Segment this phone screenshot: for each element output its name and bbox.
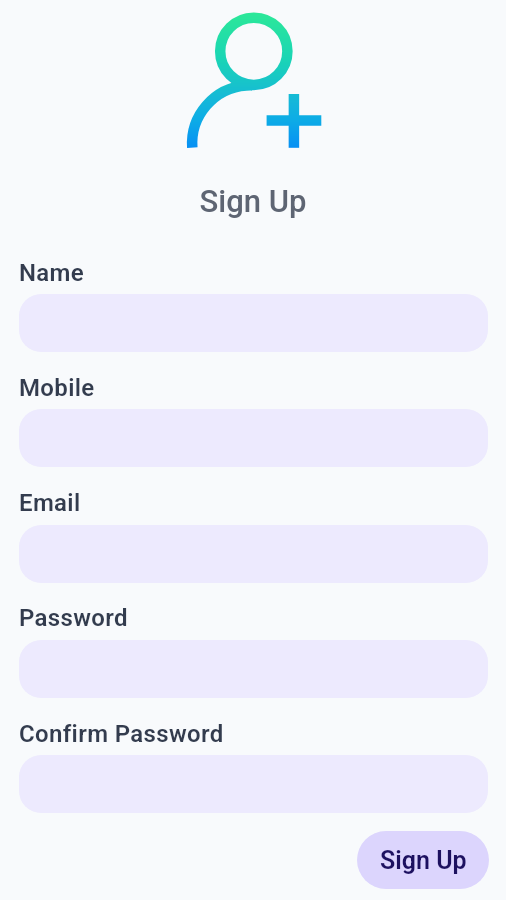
other: Add person	[0, 0, 506, 900]
staticText: Email	[19, 489, 81, 517]
staticText: Sign Up	[380, 846, 467, 875]
staticText: Sign Up	[0, 183, 506, 219]
staticText: Name	[19, 259, 85, 287]
button[interactable]: Sign Up	[357, 831, 489, 889]
staticText: Confirm Password	[19, 720, 224, 748]
staticText: Password	[19, 604, 128, 632]
staticText: Mobile	[19, 374, 95, 402]
